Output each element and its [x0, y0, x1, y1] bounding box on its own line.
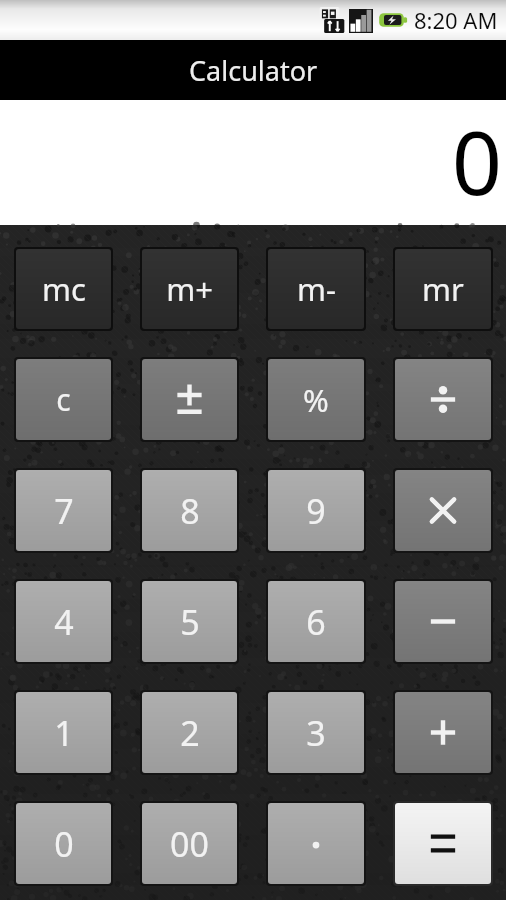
staticText: 0	[54, 821, 74, 867]
button[interactable]: Decimal point	[268, 803, 364, 884]
staticText: 9	[306, 488, 326, 534]
staticText: 5	[180, 599, 200, 645]
button[interactable]: mr	[395, 249, 491, 329]
button[interactable]: Equals	[395, 803, 491, 884]
button[interactable]: 6	[268, 581, 364, 662]
button[interactable]: 5	[142, 581, 237, 662]
button[interactable]: Minus	[395, 581, 491, 662]
staticText: %	[303, 379, 329, 421]
button[interactable]: 2	[142, 692, 237, 773]
button[interactable]: Plus	[395, 692, 491, 773]
staticText: 3	[306, 710, 326, 756]
staticText: mr	[422, 268, 464, 310]
button[interactable]: m-	[268, 249, 364, 329]
button[interactable]: 0	[16, 803, 111, 884]
staticText: 8:20 AM	[414, 5, 498, 35]
button[interactable]: %	[268, 359, 364, 440]
button[interactable]: 00	[142, 803, 237, 884]
staticText: 00	[170, 821, 209, 867]
button[interactable]: 1	[16, 692, 111, 773]
staticText: 2	[180, 710, 200, 756]
staticText: m+	[166, 268, 213, 310]
button[interactable]: c	[16, 359, 111, 440]
staticText: mc	[42, 268, 86, 310]
staticText: 4	[54, 599, 74, 645]
staticText: 7	[54, 488, 74, 534]
button[interactable]: 7	[16, 470, 111, 551]
staticText: Calculator	[189, 52, 318, 89]
button[interactable]: Multiply	[395, 470, 491, 551]
button[interactable]: 3	[268, 692, 364, 773]
staticText: m-	[297, 268, 336, 310]
staticText: 8	[180, 488, 200, 534]
button[interactable]: m+	[142, 249, 237, 329]
staticText: 1	[54, 710, 74, 756]
button[interactable]: Plus minus	[142, 359, 237, 440]
button[interactable]: Divide	[395, 359, 491, 440]
button[interactable]: 4	[16, 581, 111, 662]
staticText: 0	[451, 101, 502, 221]
staticText: c	[56, 379, 71, 420]
button[interactable]: mc	[16, 249, 111, 329]
staticText: 6	[306, 599, 326, 645]
button[interactable]: 8	[142, 470, 237, 551]
button[interactable]: 9	[268, 470, 364, 551]
